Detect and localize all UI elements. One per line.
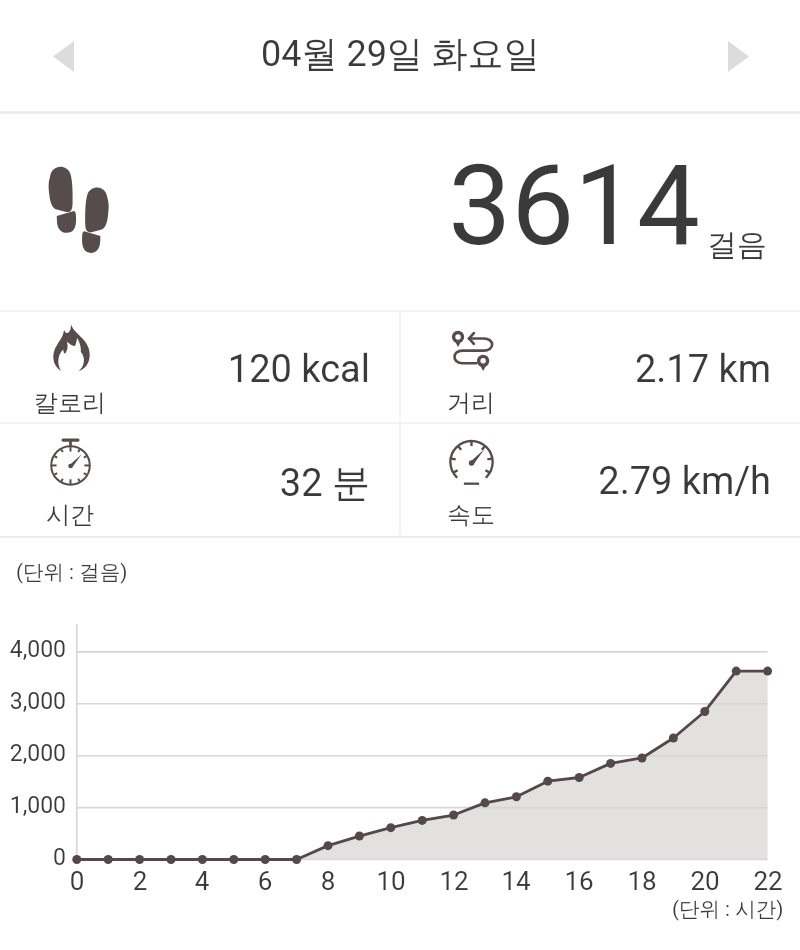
- staticText: 18: [612, 866, 672, 896]
- staticText: 2,000: [0, 740, 66, 767]
- staticText: 14: [486, 866, 546, 896]
- staticText: 3,000: [0, 688, 66, 715]
- staticText: 10: [361, 866, 421, 896]
- staticText: 속도: [411, 500, 531, 530]
- staticText: 걸음: [0, 226, 767, 264]
- staticText: (단위 : 걸음): [16, 559, 128, 585]
- staticText: 32 분: [0, 459, 370, 507]
- staticText: 2: [110, 866, 170, 896]
- staticText: 0: [0, 844, 66, 871]
- staticText: 칼로리: [10, 388, 130, 418]
- button[interactable]: 3614: [0, 113, 800, 310]
- staticText: 거리: [411, 388, 531, 418]
- button[interactable]: 거리: [401, 312, 800, 422]
- staticText: (단위 : 시간): [672, 896, 784, 922]
- button[interactable]: 속도: [401, 424, 800, 535]
- button[interactable]: Previous day: [32, 25, 94, 87]
- button[interactable]: 시간: [0, 424, 399, 535]
- staticText: 1,000: [0, 792, 66, 819]
- staticText: 2.79 km/h: [401, 459, 771, 504]
- staticText: 4: [172, 866, 232, 896]
- staticText: 16: [549, 866, 609, 896]
- staticText: 2.17 km: [401, 347, 771, 392]
- staticText: 04월 29일 화요일: [261, 31, 540, 76]
- staticText: 20: [675, 866, 735, 896]
- staticText: 0: [47, 866, 107, 896]
- staticText: 4,000: [0, 636, 66, 663]
- staticText: 12: [424, 866, 484, 896]
- staticText: 22: [738, 866, 798, 896]
- staticText: 3614: [0, 140, 700, 271]
- button[interactable]: Next day: [707, 25, 769, 87]
- staticText: 8: [298, 866, 358, 896]
- button[interactable]: 칼로리: [0, 312, 399, 422]
- staticText: 시간: [10, 500, 130, 530]
- staticText: 120 kcal: [0, 347, 370, 392]
- staticText: 6: [235, 866, 295, 896]
